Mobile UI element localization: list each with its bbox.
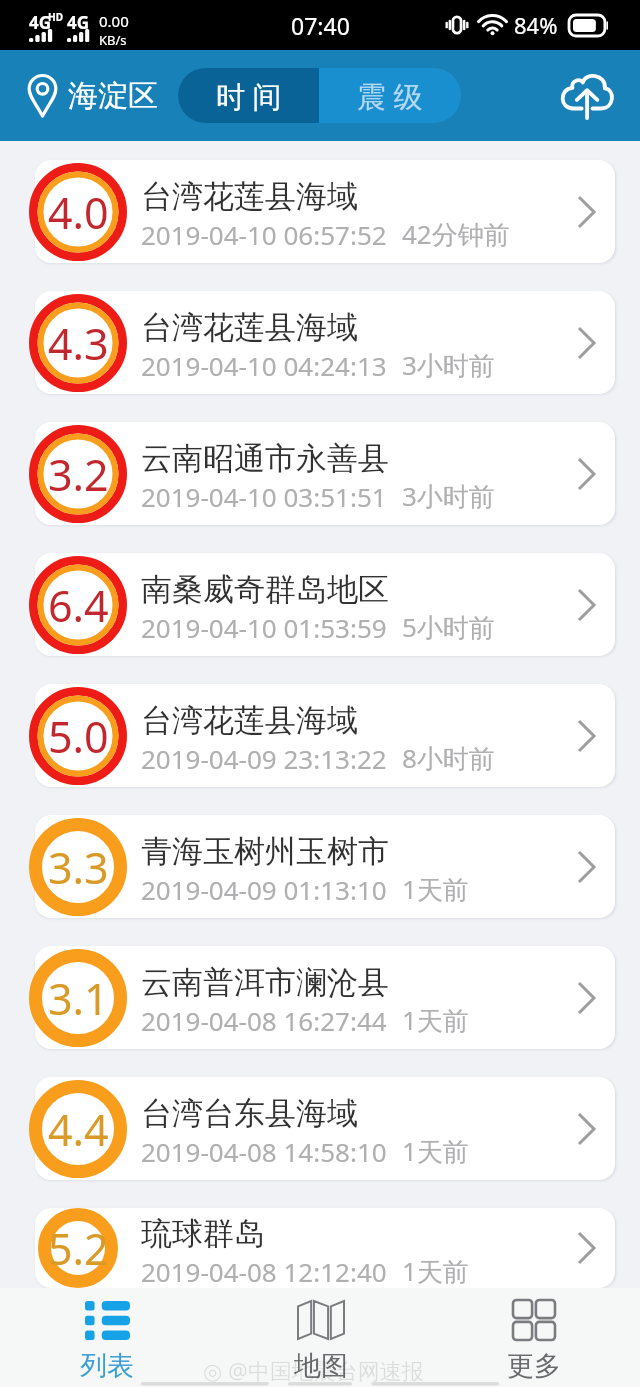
button[interactable]: 4.0 — [0, 160, 640, 263]
staticText: 1天前 — [402, 1253, 469, 1289]
button[interactable]: 时 间 — [178, 68, 319, 123]
staticText: 5.0 — [48, 707, 109, 766]
staticText: 4.3 — [48, 314, 109, 373]
button[interactable]: 地图 — [214, 1296, 427, 1379]
staticText: 地图 — [294, 1349, 348, 1383]
staticText: 时 间 — [216, 76, 282, 116]
button[interactable]: 3.3 — [0, 815, 640, 918]
staticText: 4.4 — [48, 1100, 109, 1159]
staticText: 2019-04-09 23:13:22 — [141, 741, 387, 776]
staticText: 2019-04-10 03:51:51 — [141, 479, 387, 514]
staticText: HD — [48, 10, 63, 24]
button[interactable]: Upload — [556, 66, 616, 126]
staticText: 3.1 — [48, 969, 109, 1028]
staticText: 8小时前 — [402, 740, 495, 776]
staticText: 台湾花莲县海域 — [141, 177, 358, 216]
staticText: 震 级 — [357, 76, 423, 116]
staticText: 3.2 — [48, 445, 109, 504]
button[interactable]: 6.4 — [0, 553, 640, 656]
staticText: 青海玉树州玉树市 — [141, 832, 389, 871]
staticText: 1天前 — [402, 1133, 469, 1169]
staticText: 台湾花莲县海域 — [141, 308, 358, 347]
staticText: 2019-04-09 01:13:10 — [141, 872, 387, 907]
staticText: 2019-04-10 06:57:52 — [141, 217, 387, 252]
staticText: 4.0 — [48, 183, 109, 242]
staticText: 1天前 — [402, 871, 469, 907]
button[interactable]: 4.3 — [0, 291, 640, 394]
button[interactable]: 震 级 — [319, 68, 461, 123]
staticText: 6.4 — [48, 576, 109, 635]
staticText: 5小时前 — [402, 609, 495, 645]
staticText: 台湾台东县海域 — [141, 1094, 358, 1133]
staticText: 云南昭通市永善县 — [141, 439, 389, 478]
staticText: 云南普洱市澜沧县 — [141, 963, 389, 1002]
button[interactable]: 3.1 — [0, 946, 640, 1049]
staticText: KB/s — [99, 31, 127, 49]
button[interactable]: 更多 — [427, 1296, 640, 1379]
staticText: 列表 — [80, 1349, 134, 1383]
staticText: 台湾花莲县海域 — [141, 701, 358, 740]
staticText: 2019-04-08 16:27:44 — [141, 1003, 387, 1038]
staticText: 42分钟前 — [402, 216, 510, 252]
staticText: 琉球群岛 — [141, 1214, 265, 1253]
staticText: 3.3 — [48, 838, 109, 897]
staticText: 2019-04-10 01:53:59 — [141, 610, 387, 645]
staticText: 3小时前 — [402, 347, 495, 383]
staticText: 南桑威奇群岛地区 — [141, 570, 389, 609]
staticText: 2019-04-10 04:24:13 — [141, 348, 387, 383]
staticText: 1天前 — [402, 1002, 469, 1038]
staticText: 海淀区 — [68, 77, 158, 115]
staticText: 3小时前 — [402, 478, 495, 514]
staticText: 4G — [29, 11, 52, 34]
button[interactable]: 5.0 — [0, 684, 640, 787]
button[interactable]: 3.2 — [0, 422, 640, 525]
staticText: ◎ @中国地震台网速报 — [203, 1355, 424, 1385]
staticText: 5.2 — [48, 1219, 109, 1278]
staticText: 0.00 — [99, 11, 129, 31]
button[interactable]: 5.2 — [0, 1208, 640, 1288]
staticText: 2019-04-08 14:58:10 — [141, 1134, 387, 1169]
staticText: 07:40 — [291, 10, 350, 41]
staticText: 2019-04-08 12:12:40 — [141, 1254, 387, 1289]
staticText: 更多 — [507, 1349, 561, 1383]
button[interactable]: 海淀区 — [28, 73, 158, 118]
staticText: 4G — [67, 11, 90, 34]
button[interactable]: 4.4 — [0, 1077, 640, 1180]
staticText: 84% — [514, 10, 558, 40]
button[interactable]: 列表 — [0, 1297, 214, 1379]
